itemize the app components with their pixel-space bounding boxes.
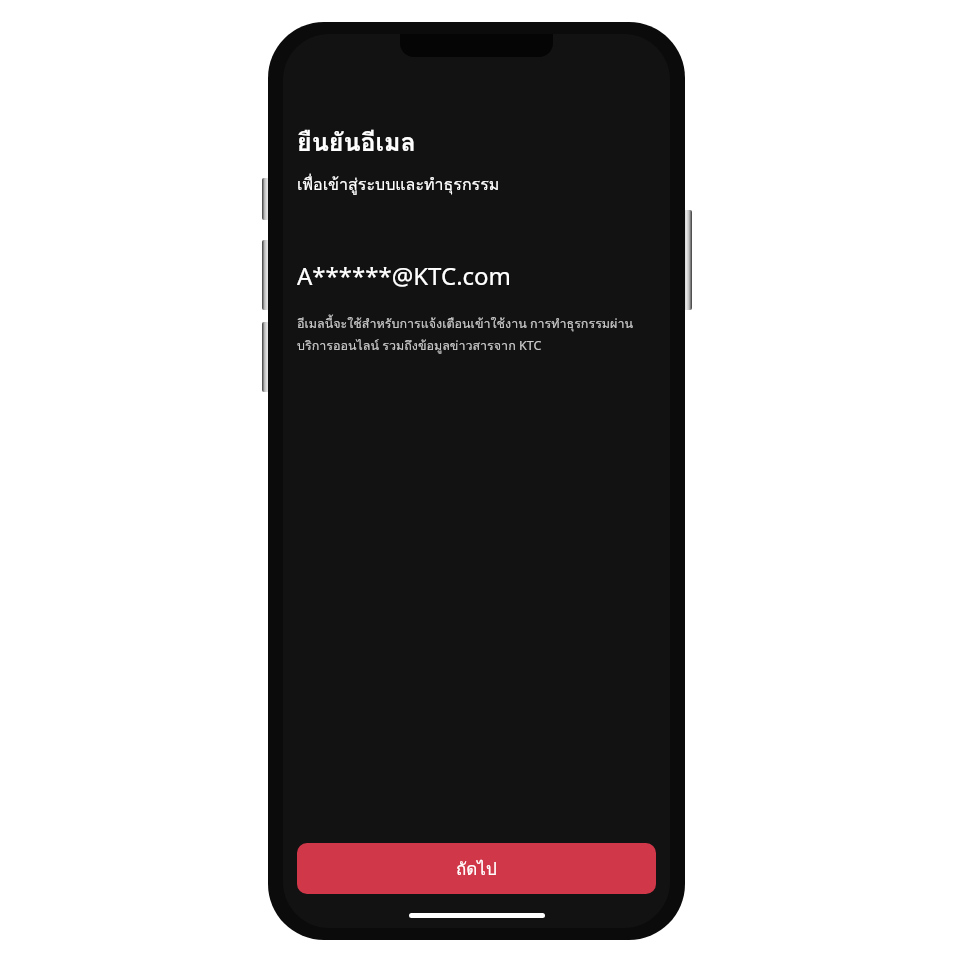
staticText: อีเมลนี้จะใช้สำหรับการแจ้งเตือนเข้าใช้งา… bbox=[297, 314, 656, 355]
staticText: ถัดไป bbox=[456, 855, 497, 882]
staticText: A******@KTC.com bbox=[297, 259, 512, 292]
button[interactable]: ถัดไป bbox=[297, 843, 656, 894]
staticText: ยืนยันอีเมล bbox=[297, 122, 416, 162]
staticText: เพื่อเข้าสู่ระบบและทำธุรกรรม bbox=[297, 172, 500, 197]
other: Home indicator bbox=[409, 913, 545, 918]
